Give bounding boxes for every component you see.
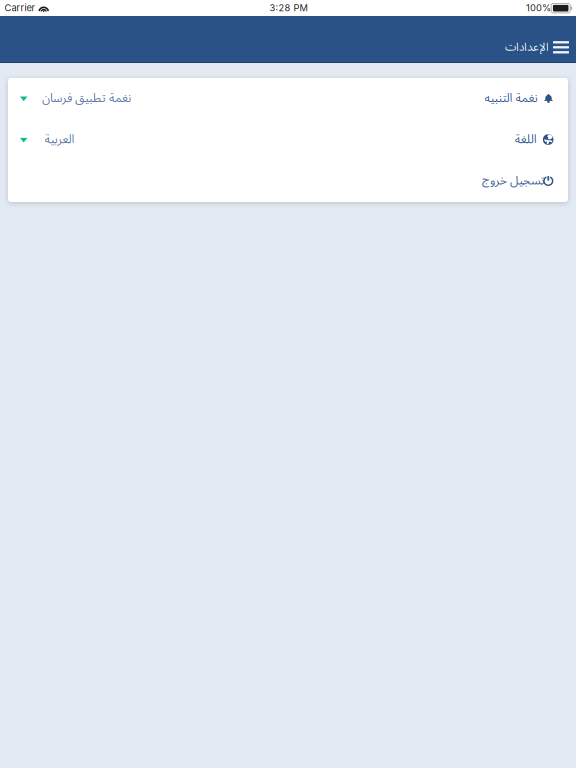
staticText: اللغة (514, 130, 536, 147)
staticText: نغمة تطبيق فرسان (41, 89, 130, 105)
staticText: 100% (526, 2, 551, 13)
staticText: 3:28 PM (269, 2, 307, 13)
button[interactable] (8, 120, 568, 161)
staticText: الإعدادات (505, 39, 549, 54)
button[interactable] (8, 161, 568, 202)
staticText: نغمة التنبيه (484, 89, 537, 105)
staticText: العربية (44, 130, 74, 147)
button[interactable]: الإعدادات (502, 36, 552, 57)
button[interactable]: Menu (549, 37, 573, 57)
staticText: Carrier (4, 2, 35, 13)
staticText: تسجيل خروج (481, 172, 544, 188)
button[interactable] (8, 78, 568, 120)
